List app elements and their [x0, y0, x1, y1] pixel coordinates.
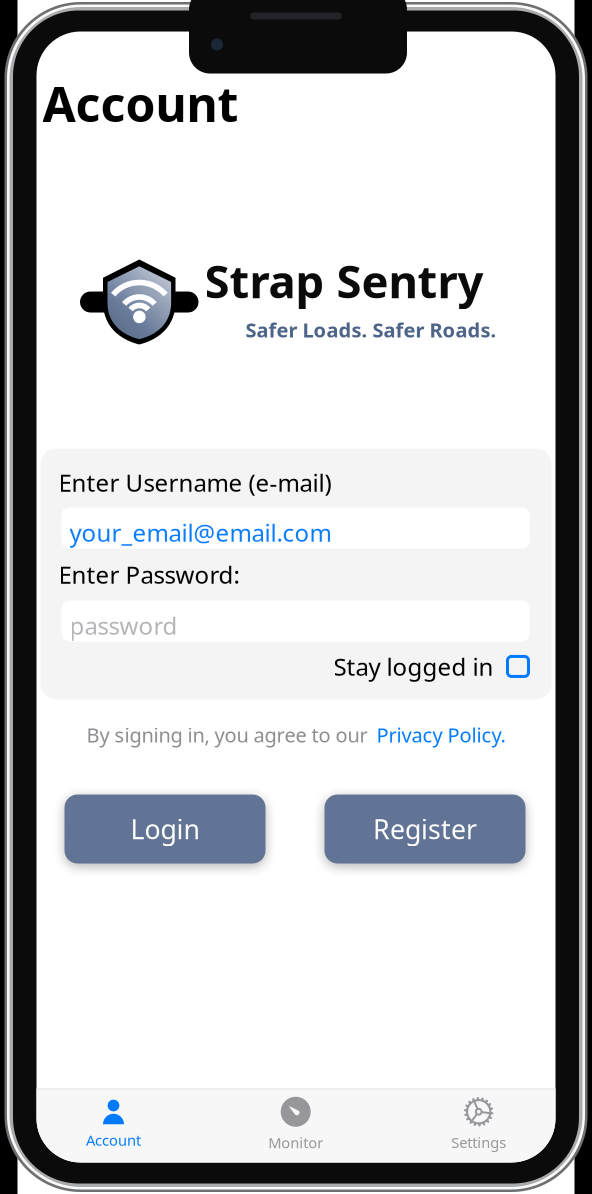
staticText: Monitor: [268, 1133, 323, 1152]
staticText: Stay logged in: [333, 650, 493, 682]
staticText: Strap Sentry: [204, 250, 483, 311]
staticText: password: [69, 609, 177, 641]
button[interactable]: Register: [324, 794, 525, 863]
button[interactable]: Privacy Policy.: [376, 721, 505, 748]
staticText: Settings: [451, 1132, 506, 1152]
staticText: Register: [373, 811, 477, 847]
button[interactable]: Login: [64, 794, 265, 863]
button[interactable]: Account: [58, 1098, 168, 1150]
button[interactable]: Settings: [424, 1098, 534, 1150]
staticText: Account: [86, 1130, 141, 1150]
button[interactable]: Monitor: [241, 1098, 351, 1150]
staticText: Enter Password:: [58, 558, 239, 590]
staticText: Privacy Policy.: [376, 721, 505, 748]
staticText: Login: [130, 811, 199, 847]
staticText: Account: [42, 71, 238, 135]
staticText: your_email@email.com: [69, 516, 331, 548]
staticText: Safer Loads. Safer Roads.: [245, 316, 496, 343]
staticText: Enter Username (e-mail): [58, 466, 331, 498]
button[interactable]: Stay logged in: [333, 650, 528, 682]
staticText: By signing in, you agree to our: [86, 721, 367, 748]
